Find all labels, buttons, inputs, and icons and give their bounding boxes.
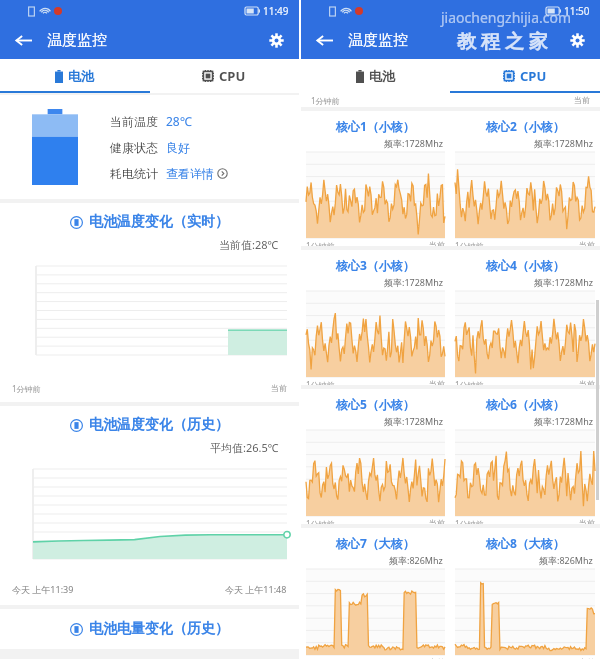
staticText: 频率:826Mhz bbox=[539, 554, 593, 566]
staticText: 当前温度 bbox=[110, 114, 158, 129]
staticText: 频率:1728Mhz bbox=[534, 415, 593, 427]
staticText: 耗电统计 bbox=[110, 166, 158, 181]
staticText: 1分钟前 bbox=[306, 379, 335, 385]
button[interactable]: 电池 bbox=[0, 59, 149, 93]
button[interactable]: Settings bbox=[261, 25, 291, 55]
button[interactable]: 查看详情 bbox=[166, 166, 228, 181]
staticText: 当前 bbox=[429, 518, 445, 524]
staticText: 频率:1728Mhz bbox=[384, 415, 443, 427]
staticText: 当前 bbox=[579, 240, 595, 246]
staticText: 频率:1728Mhz bbox=[384, 137, 443, 149]
staticText: 频率:1728Mhz bbox=[534, 137, 593, 149]
staticText: 核心5（小核） bbox=[336, 396, 415, 412]
staticText: 当前 bbox=[429, 379, 445, 385]
staticText: 28℃ bbox=[166, 113, 192, 129]
staticText: 电池 bbox=[68, 68, 94, 84]
staticText: 教 程 之 家 bbox=[457, 28, 548, 54]
button[interactable]: CPU bbox=[149, 59, 299, 93]
staticText: 电池温度变化（历史） bbox=[89, 416, 229, 434]
staticText: 1分钟前 bbox=[311, 95, 340, 106]
staticText: 核心3（小核） bbox=[336, 257, 415, 273]
staticText: 电池电量变化（历史） bbox=[89, 620, 229, 638]
staticText: 电池 bbox=[369, 68, 395, 84]
staticText: 当前值:28℃ bbox=[219, 237, 279, 252]
staticText: 核心4（小核） bbox=[486, 257, 565, 273]
staticText: 核心7（大核） bbox=[336, 535, 415, 551]
staticText: 当前 bbox=[574, 95, 590, 105]
staticText: 核心1（小核） bbox=[336, 118, 415, 134]
staticText: 温度监控 bbox=[47, 31, 107, 50]
staticText: 频率:1728Mhz bbox=[384, 276, 443, 288]
staticText: 1分钟前 bbox=[455, 518, 484, 524]
staticText: 频率:826Mhz bbox=[389, 554, 443, 566]
staticText: 查看详情 bbox=[166, 166, 214, 181]
staticText: 平均值:26.5℃ bbox=[210, 440, 279, 455]
staticText: 11:49 bbox=[263, 4, 289, 18]
staticText: jiaochengzhijia.com bbox=[441, 8, 572, 27]
staticText: 1分钟前 bbox=[306, 518, 335, 524]
button[interactable]: 电池 bbox=[301, 59, 450, 93]
staticText: 频率:1728Mhz bbox=[534, 276, 593, 288]
staticText: CPU bbox=[520, 67, 547, 85]
staticText: 今天 上午11:39 bbox=[12, 583, 74, 595]
button[interactable]: CPU bbox=[450, 59, 600, 93]
staticText: 核心2（小核） bbox=[486, 118, 565, 134]
staticText: 电池温度变化（实时） bbox=[89, 213, 229, 231]
staticText: 当前 bbox=[579, 657, 595, 659]
staticText: CPU bbox=[219, 67, 246, 85]
staticText: 当前 bbox=[429, 240, 445, 246]
staticText: 核心8（大核） bbox=[486, 535, 565, 551]
staticText: 当前 bbox=[579, 518, 595, 524]
staticText: 当前 bbox=[429, 657, 445, 659]
staticText: 1分钟前 bbox=[455, 379, 484, 385]
staticText: 当前 bbox=[579, 379, 595, 385]
staticText: 1分钟前 bbox=[12, 383, 41, 394]
staticText: 今天 上午11:48 bbox=[225, 583, 287, 595]
button[interactable]: Back bbox=[8, 25, 38, 55]
staticText: 健康状态 bbox=[110, 140, 158, 155]
staticText: 当前 bbox=[271, 383, 287, 393]
staticText: 11:50 bbox=[564, 4, 590, 18]
staticText: 1分钟前 bbox=[455, 240, 484, 246]
staticText: 良好 bbox=[166, 140, 190, 155]
button[interactable]: Settings bbox=[562, 25, 592, 55]
staticText: 核心6（小核） bbox=[486, 396, 565, 412]
staticText: 温度监控 bbox=[348, 31, 408, 50]
staticText: 1分钟前 bbox=[306, 240, 335, 246]
button[interactable]: Back bbox=[309, 25, 339, 55]
